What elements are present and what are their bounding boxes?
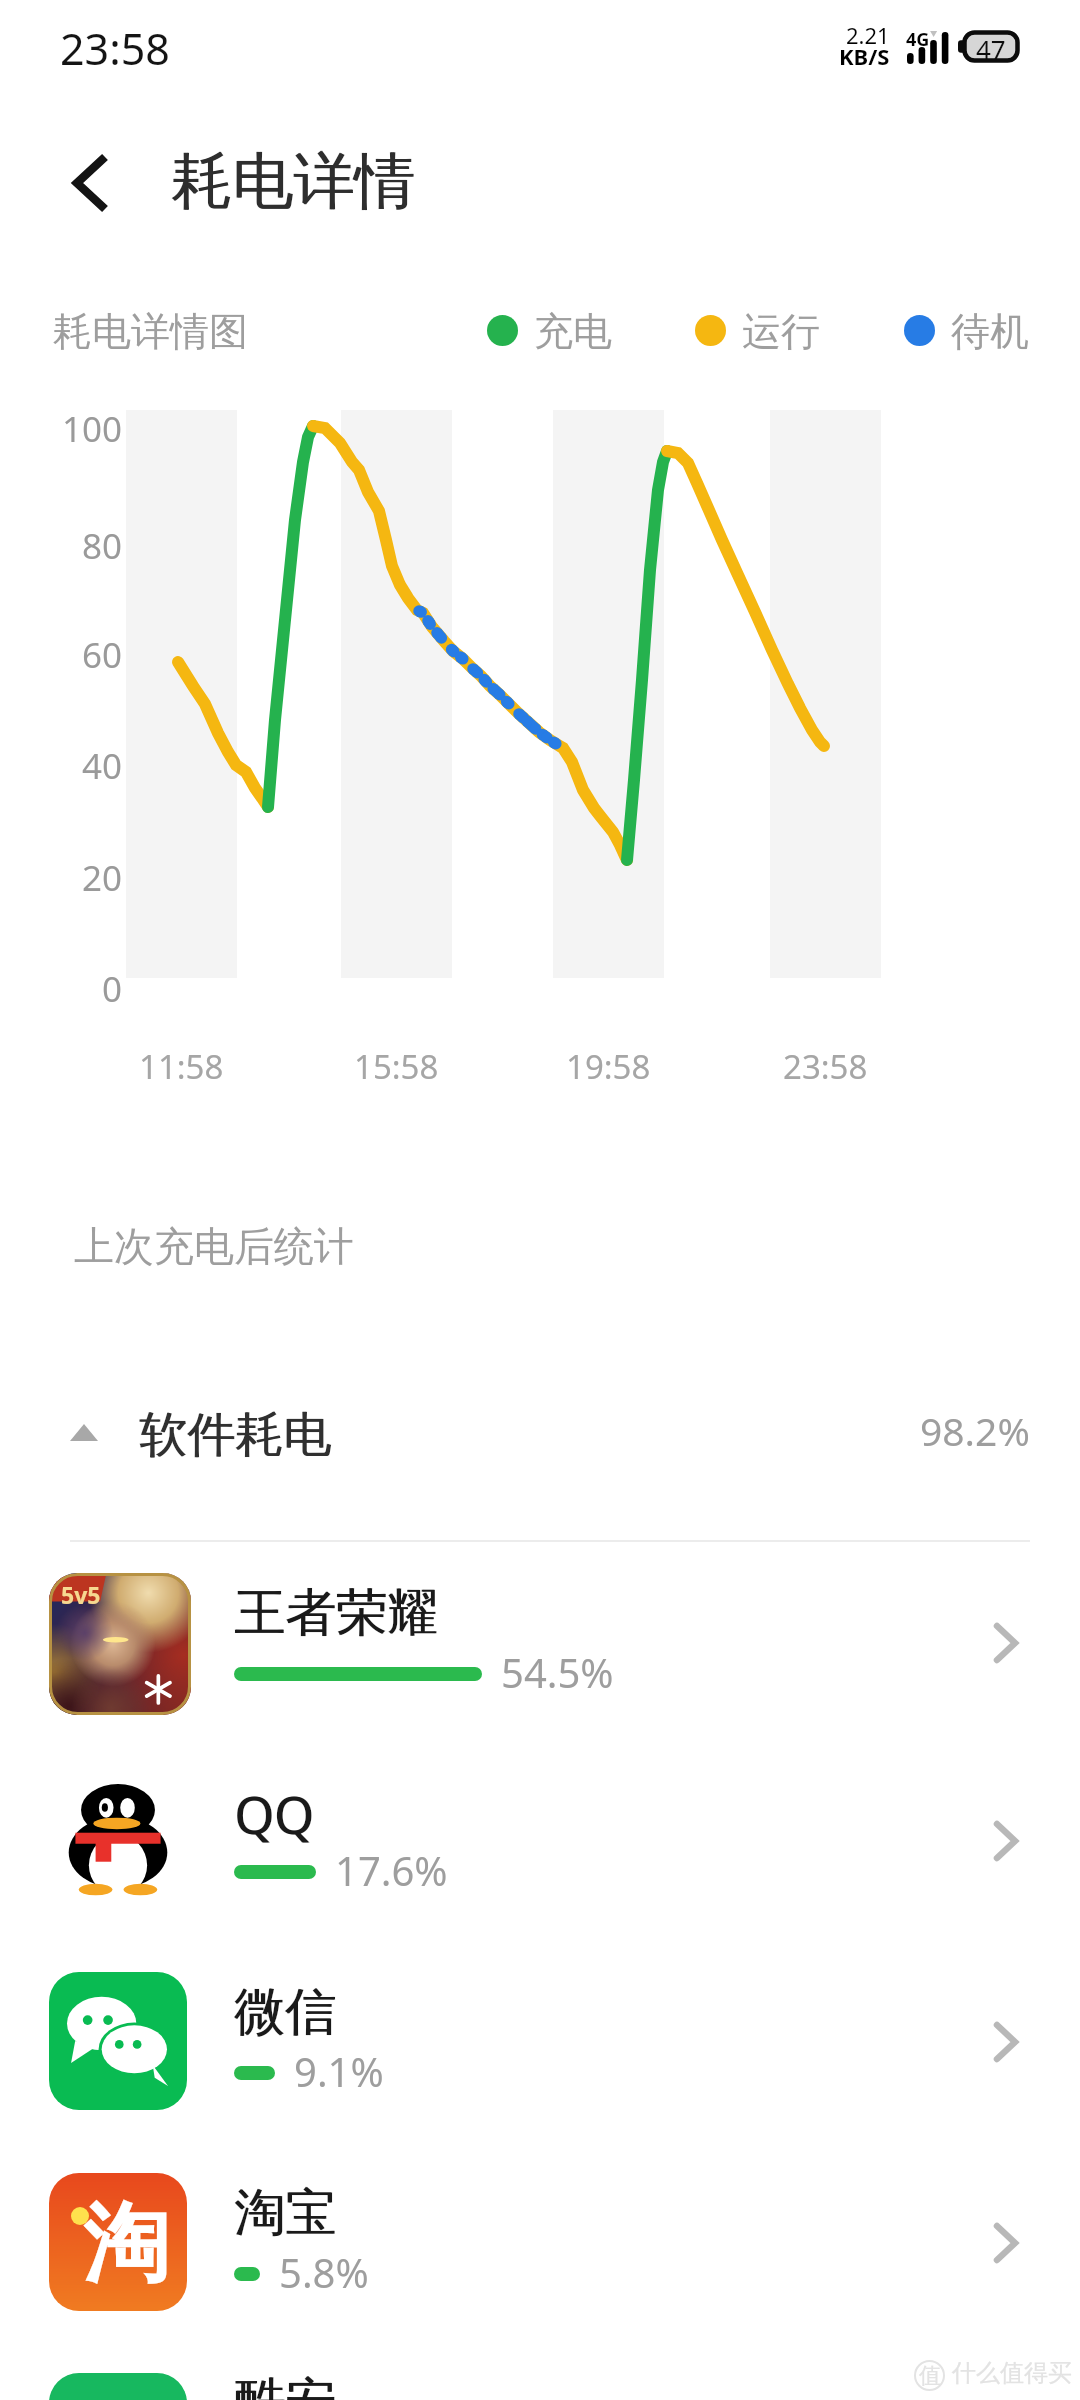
staticText: 23:58 — [783, 1044, 868, 1089]
button[interactable]: QQ — [0, 1742, 1080, 1940]
button[interactable]: 软件耗电 — [0, 1372, 1080, 1492]
staticText: 20 — [82, 854, 123, 902]
staticText: QQ — [235, 1779, 315, 1848]
button[interactable]: 5v5 — [0, 1544, 1080, 1742]
staticText: 47 — [976, 31, 1006, 62]
button[interactable]: Back — [48, 140, 134, 226]
staticText: 待机 — [951, 307, 1029, 356]
staticText: 40 — [82, 742, 123, 790]
staticText: 王者荣耀 — [235, 1581, 439, 1645]
staticText: 17.6% — [335, 1843, 448, 1897]
staticText: 酷安 — [234, 2370, 336, 2400]
staticText: 19:58 — [566, 1044, 651, 1089]
staticText: 5v5 — [61, 1579, 101, 1610]
staticText: 54.5% — [501, 1645, 614, 1699]
staticText: 酷安 — [235, 2370, 337, 2400]
staticText: 4G — [906, 27, 930, 52]
staticText: 耗电详情 — [172, 143, 416, 220]
staticText: 软件耗电 — [139, 1405, 331, 1465]
staticText: 上次充电后统计 — [74, 1221, 354, 1271]
staticText: 充电 — [534, 307, 612, 356]
staticText: 2.21 — [846, 20, 890, 50]
staticText: 微信 — [234, 1980, 336, 2044]
staticText: 0 — [102, 965, 123, 1013]
staticText: 耗电详情图 — [53, 307, 248, 356]
button[interactable]: 运行 — [695, 307, 820, 356]
staticText: 什么值得买 — [952, 2358, 1072, 2388]
staticText: 11:58 — [139, 1044, 224, 1089]
staticText: 淘 — [83, 2190, 169, 2298]
staticText: 60 — [82, 631, 123, 679]
staticText: 98.2% — [920, 1404, 1030, 1457]
staticText: 80 — [82, 522, 123, 570]
button[interactable]: 充电 — [487, 307, 612, 356]
staticText: KB/S — [839, 41, 890, 71]
staticText: 9.1% — [294, 2044, 384, 2098]
staticText: 微信 — [235, 1980, 337, 2044]
staticText: 耗电详情 — [171, 143, 415, 220]
staticText: 淘宝 — [235, 2181, 337, 2245]
button[interactable]: 微信 — [0, 1943, 1080, 2141]
button[interactable]: 待机 — [904, 307, 1029, 356]
staticText: 软件耗电 — [140, 1405, 332, 1465]
staticText: 23:58 — [60, 19, 170, 78]
staticText: 淘宝 — [234, 2181, 336, 2245]
staticText: 运行 — [742, 307, 820, 356]
staticText: 5.8% — [279, 2245, 369, 2299]
staticText: 15:58 — [354, 1044, 439, 1089]
staticText: 100 — [62, 405, 123, 453]
staticText: QQ — [234, 1779, 314, 1848]
staticText: 王者荣耀 — [234, 1581, 438, 1645]
staticText: 值 — [919, 2362, 941, 2390]
button[interactable]: 淘 — [0, 2144, 1080, 2342]
